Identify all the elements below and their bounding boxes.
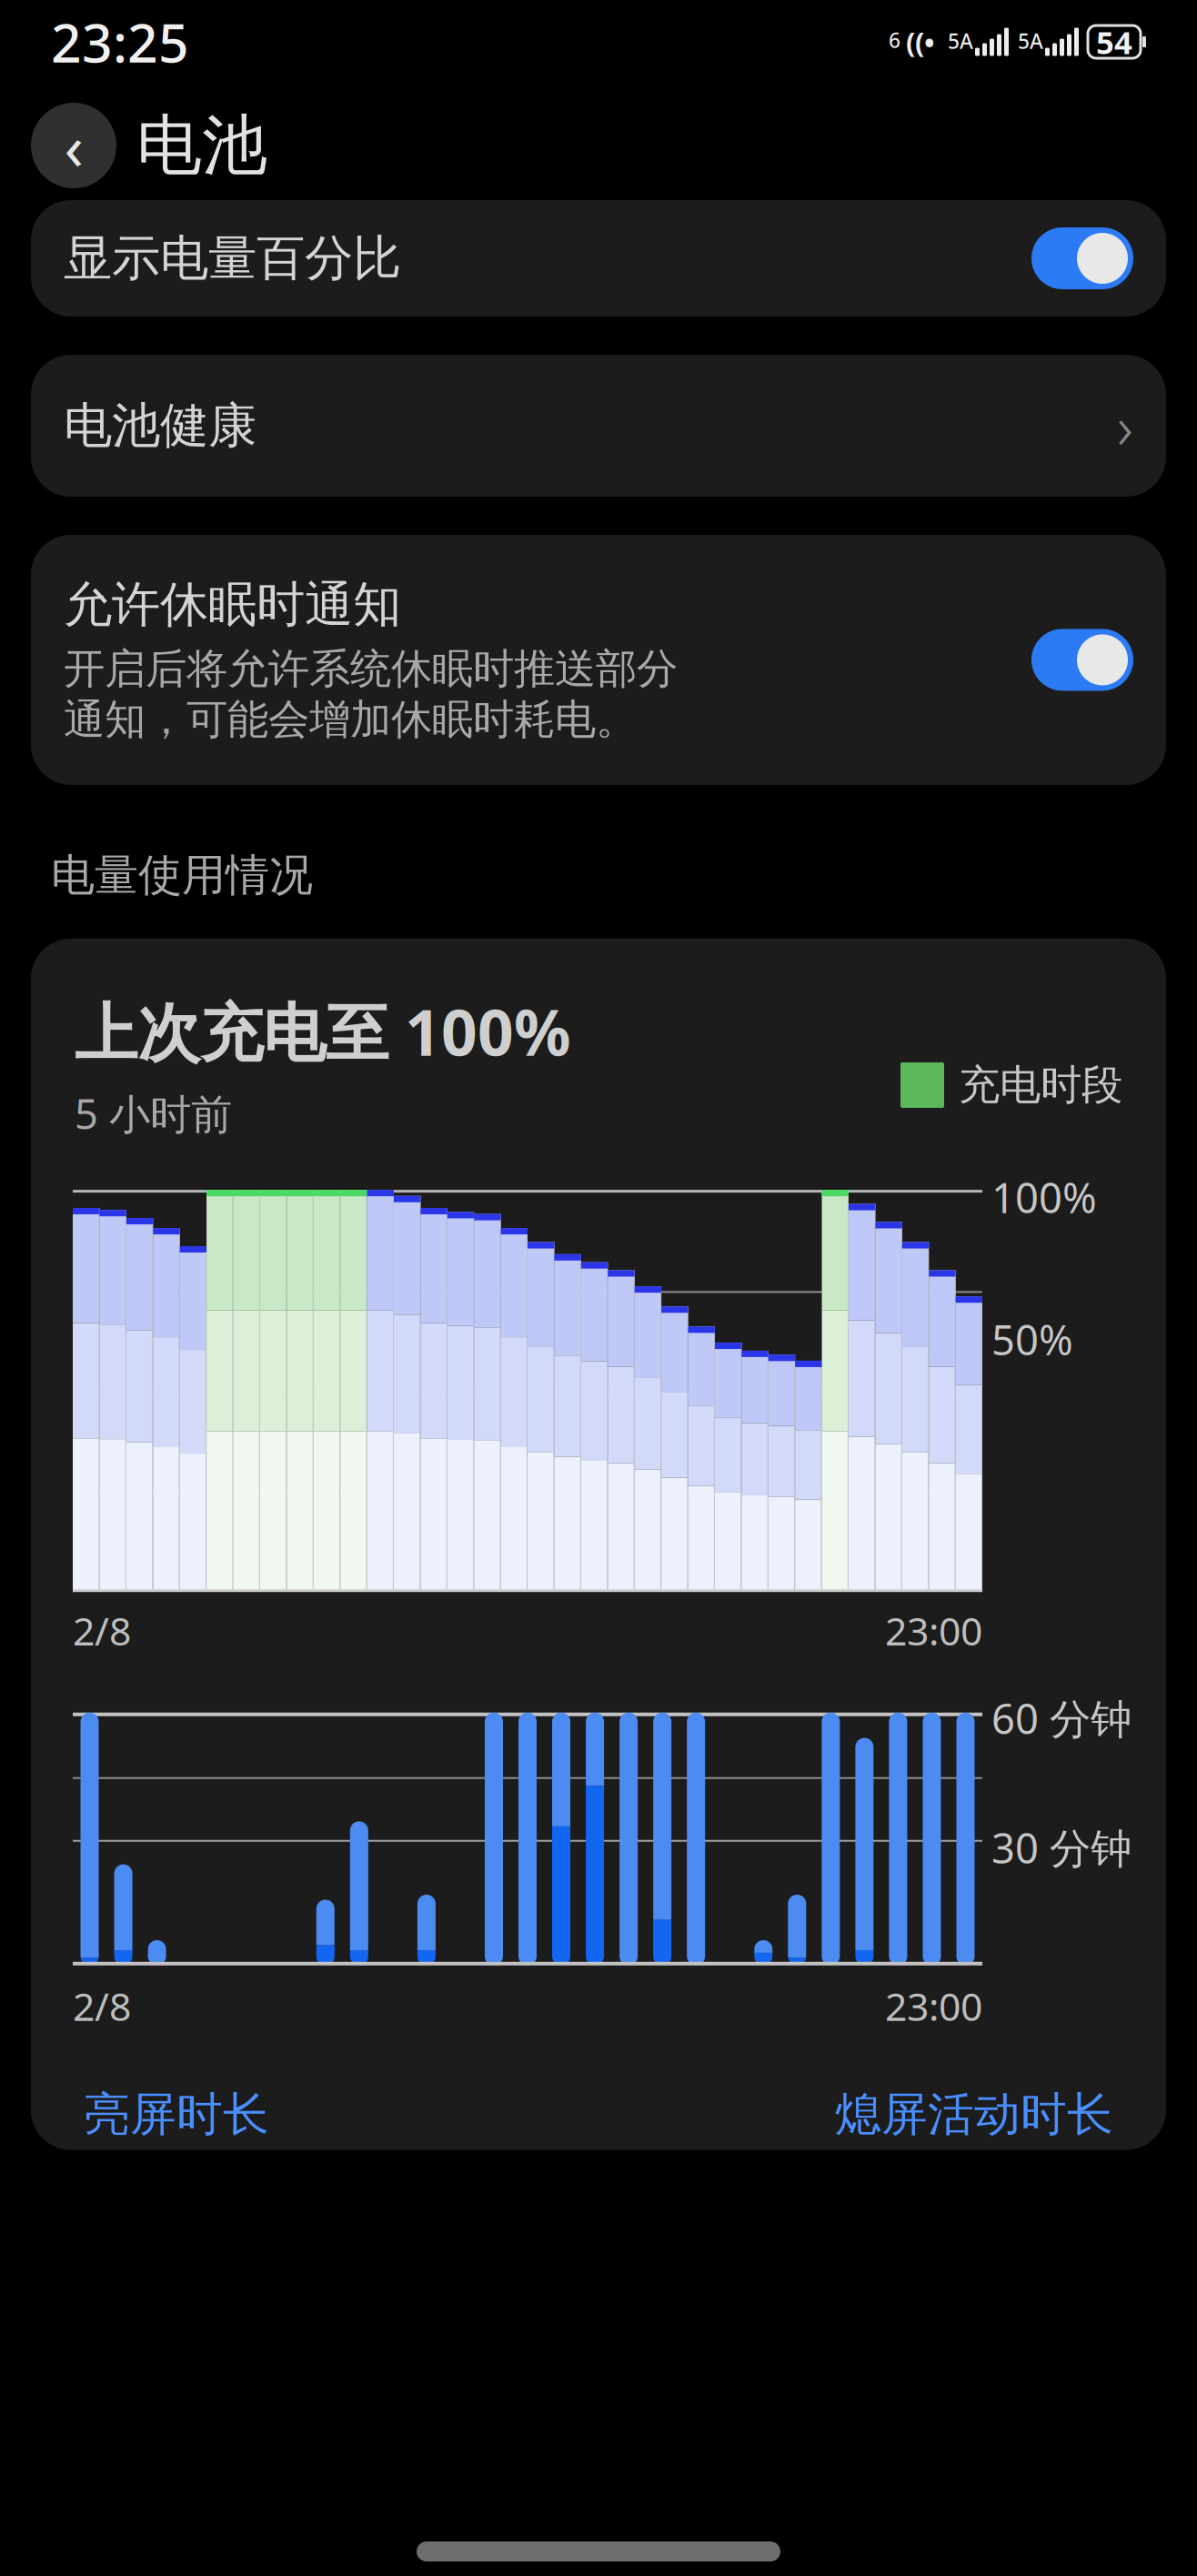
staticText: 熄屏活动时长: [835, 2086, 1113, 2143]
staticText: 23:25: [51, 6, 189, 77]
staticText: 23:00: [885, 1980, 982, 2032]
staticText: 开启后将允许系统休眠时推送部分通知，可能会增加休眠时耗电。: [64, 644, 678, 745]
staticText: 亮屏时长: [84, 2086, 269, 2143]
staticText: ((•: [906, 23, 935, 60]
button[interactable]: 熄屏活动时长: [835, 2079, 1113, 2150]
staticText: 60 分钟: [991, 1691, 1132, 1746]
staticText: 54: [1096, 21, 1132, 63]
staticText: 显示电量百分比: [64, 228, 401, 288]
button[interactable]: 返回: [31, 103, 116, 188]
staticText: 50%: [991, 1312, 1073, 1367]
staticText: 6: [889, 26, 900, 54]
staticText: 上次充电至 100%: [75, 989, 571, 1073]
staticText: 5A: [1018, 27, 1043, 55]
staticText: 允许休眠时通知: [64, 575, 401, 634]
button[interactable]: 电池健康: [31, 355, 1166, 497]
staticText: 23:00: [885, 1605, 982, 1656]
staticText: 100%: [991, 1170, 1097, 1225]
staticText: 5A: [948, 27, 973, 55]
staticText: 2/8: [73, 1605, 131, 1656]
staticText: 电池健康: [64, 396, 256, 455]
staticText: 电量使用情况: [51, 849, 313, 902]
button[interactable]: 显示电量百分比: [31, 200, 1166, 317]
staticText: 5 小时前: [75, 1086, 232, 1141]
staticText: ›: [1117, 385, 1133, 466]
staticText: 2/8: [73, 1980, 131, 2032]
staticText: 电池: [136, 105, 267, 186]
button[interactable]: 亮屏时长: [84, 2079, 269, 2150]
staticText: 30 分钟: [991, 1820, 1132, 1875]
staticText: ‹: [64, 104, 83, 187]
button[interactable]: 允许休眠时通知: [31, 535, 1166, 785]
staticText: 充电时段: [959, 1060, 1122, 1110]
